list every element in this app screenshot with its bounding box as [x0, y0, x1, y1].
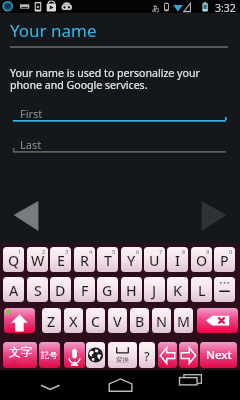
staticText: M — [177, 312, 191, 331]
staticText: H — [126, 281, 137, 300]
staticText: P — [220, 251, 229, 270]
staticText: 5 — [112, 248, 116, 255]
button[interactable]: T — [97, 247, 118, 272]
staticText: Z — [47, 312, 56, 331]
button[interactable]: H — [121, 277, 142, 302]
button[interactable]: U — [144, 247, 165, 272]
staticText: Your name — [10, 19, 97, 42]
staticText: D — [55, 281, 66, 300]
staticText: Next — [206, 347, 232, 363]
button[interactable]: Voice input — [64, 342, 85, 368]
button[interactable]: C — [86, 308, 105, 333]
button[interactable]: Space — [108, 342, 137, 368]
staticText: G — [102, 281, 113, 300]
staticText: N — [156, 312, 168, 331]
button[interactable]: Q — [3, 247, 24, 272]
button[interactable]: F — [74, 277, 95, 302]
button[interactable]: B — [130, 308, 149, 333]
staticText: E — [57, 251, 65, 270]
button[interactable]: D — [50, 277, 71, 302]
staticText: C — [91, 312, 101, 331]
button[interactable]: W — [27, 247, 48, 272]
staticText: First — [20, 106, 43, 121]
button[interactable]: Z — [42, 308, 61, 333]
button[interactable]: R — [74, 247, 95, 272]
button[interactable]: ? — [139, 342, 155, 368]
button[interactable]: Hyphen — [214, 277, 235, 302]
staticText: 3:32 — [215, 1, 236, 14]
staticText: 7 — [159, 248, 163, 255]
staticText: 1 — [26, 358, 30, 366]
staticText: V — [113, 312, 122, 331]
button[interactable]: S — [27, 277, 48, 302]
staticText: あ — [11, 358, 18, 366]
staticText: R — [80, 251, 89, 270]
button[interactable]: Next — [198, 198, 232, 236]
button[interactable]: I — [167, 247, 188, 272]
staticText: J — [152, 281, 157, 300]
button[interactable]: Character mode — [3, 342, 37, 368]
staticText: Q — [8, 251, 20, 270]
staticText: B — [135, 312, 145, 331]
staticText: A — [9, 281, 19, 300]
button[interactable]: Y — [121, 247, 142, 272]
button[interactable]: O — [191, 247, 212, 272]
staticText: 3 — [65, 248, 69, 255]
staticText: F — [81, 281, 89, 300]
button[interactable]: E — [50, 247, 71, 272]
staticText: 6 — [136, 248, 140, 255]
staticText: 2 — [42, 248, 46, 255]
staticText: L — [198, 281, 206, 300]
staticText: T — [104, 251, 112, 270]
staticText: 文字 — [9, 345, 32, 359]
button[interactable]: N — [152, 308, 171, 333]
staticText: 8 — [182, 248, 186, 255]
button[interactable]: A — [3, 277, 24, 302]
button[interactable]: V — [108, 308, 127, 333]
staticText: X — [69, 312, 78, 331]
staticText: O — [196, 251, 208, 270]
staticText: W — [31, 251, 45, 270]
button[interactable]: Switch input method — [86, 342, 105, 368]
button[interactable]: Backspace — [197, 308, 238, 333]
button[interactable]: Shift — [4, 308, 35, 333]
staticText: 変換 — [116, 356, 129, 364]
staticText: Your name is used to personalize your ph… — [10, 66, 200, 93]
button[interactable]: Previous — [8, 198, 42, 236]
button[interactable]: Recent apps — [172, 370, 210, 400]
staticText: あ — [152, 3, 161, 13]
button[interactable]: Home — [100, 370, 142, 400]
button[interactable]: Move cursor right — [179, 342, 198, 368]
button[interactable]: L — [191, 277, 212, 302]
staticText: 9 — [206, 248, 210, 255]
staticText: S — [34, 281, 42, 300]
staticText: 1 — [18, 248, 22, 255]
staticText: 記号 — [41, 350, 58, 360]
staticText: Y — [127, 251, 136, 270]
staticText: 0 — [229, 248, 233, 255]
button[interactable]: Symbols — [39, 342, 60, 368]
staticText: U — [149, 251, 160, 270]
staticText: I — [175, 251, 181, 270]
button[interactable]: Move cursor left — [158, 342, 177, 368]
staticText: ? — [144, 348, 150, 365]
button[interactable]: X — [64, 308, 83, 333]
staticText: Last — [20, 137, 42, 152]
staticText: 4 — [89, 248, 93, 255]
button[interactable]: Hide keyboard — [30, 370, 70, 400]
staticText: K — [173, 281, 182, 300]
button[interactable]: G — [97, 277, 118, 302]
button[interactable]: First — [0, 104, 240, 126]
button[interactable]: M — [174, 308, 193, 333]
button[interactable]: Next — [200, 342, 237, 368]
button[interactable]: K — [167, 277, 188, 302]
button[interactable]: Last — [0, 135, 240, 157]
button[interactable]: P — [214, 247, 235, 272]
button[interactable]: J — [144, 277, 165, 302]
staticText: A — [20, 358, 24, 366]
